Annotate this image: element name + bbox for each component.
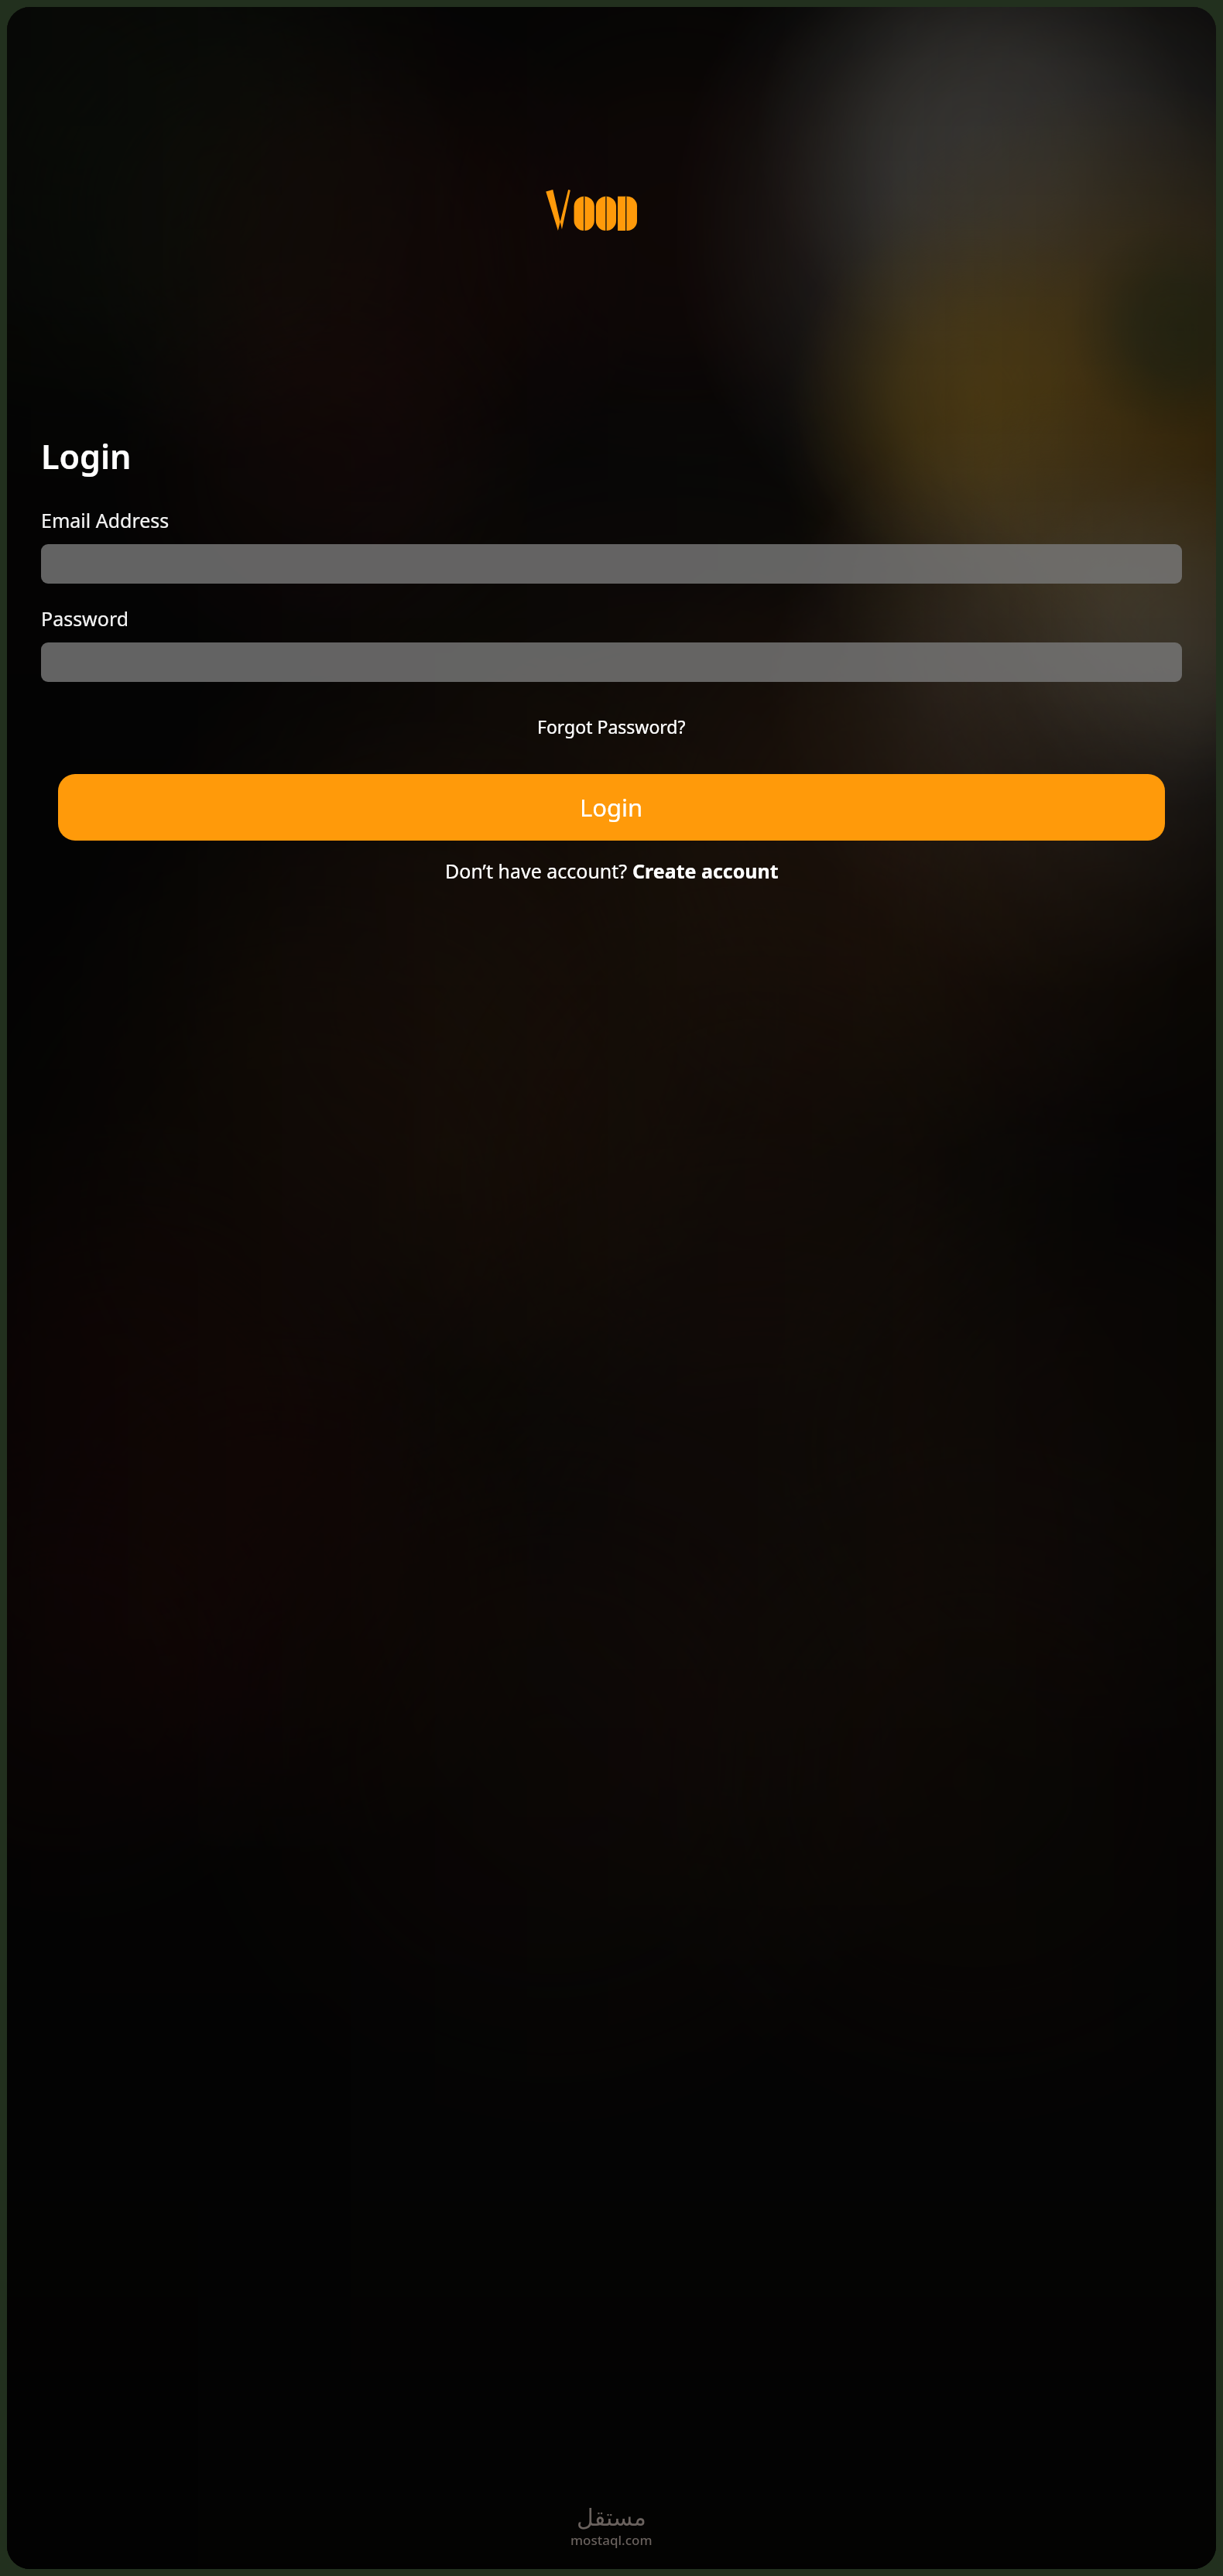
- staticText: Login: [41, 433, 132, 479]
- staticText: Create account: [632, 858, 779, 884]
- staticText: Don’t have account?: [445, 858, 632, 884]
- staticText: mostaql.com: [570, 2531, 653, 2549]
- button[interactable]: Login: [58, 774, 1165, 841]
- staticText: مستقل: [577, 2504, 646, 2531]
- button[interactable]: Don’t have account?: [41, 858, 1182, 884]
- button[interactable]: [41, 642, 1182, 682]
- staticText: Login: [580, 791, 643, 824]
- staticText: Email Address: [41, 507, 170, 533]
- button[interactable]: [41, 544, 1182, 584]
- button[interactable]: Forgot Password?: [41, 714, 1182, 738]
- staticText: Forgot Password?: [537, 714, 686, 738]
- staticText: Password: [41, 605, 129, 632]
